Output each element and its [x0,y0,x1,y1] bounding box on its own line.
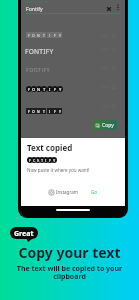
staticText: Y [53,158,56,163]
staticText: F [54,87,57,92]
staticText: Y [59,109,61,114]
staticText: Copy your text [0,243,139,262]
button[interactable]: Instagram [21,186,125,198]
staticText: F [28,87,31,92]
staticText: T [43,109,45,114]
staticText: F [28,109,30,114]
staticText: F [29,158,31,163]
staticText: N [37,109,40,114]
staticText: F [54,33,56,38]
staticText: The text will be copied to your clipboar… [0,264,139,281]
staticText: N [37,87,41,92]
staticText: Great [14,229,34,239]
staticText: N [37,158,40,163]
staticText: Y [59,33,61,38]
staticText: I [49,87,51,92]
staticText: Now paste it where you want! [27,167,90,173]
staticText: Go [91,189,97,195]
staticText: Y [59,87,62,92]
staticText: I [45,158,47,163]
button[interactable]: Clear text [105,5,113,13]
staticText: Enter your text [25,0,51,4]
staticText: I [49,109,51,114]
staticText: Instagram [56,189,78,195]
staticText: O [32,33,35,38]
staticText: Fontify [26,5,43,12]
staticText: FONTIFY [25,47,54,56]
staticText: O [32,109,35,114]
button[interactable]: Copy [93,120,117,130]
button[interactable]: More options [115,4,121,11]
staticText: O [33,158,36,163]
staticText: T [43,33,45,38]
staticText: F [54,109,56,114]
staticText: T [43,87,46,92]
staticText: F [28,33,30,38]
staticText: O [32,87,36,92]
staticText: ғօռтıғʏ [26,65,50,74]
staticText: N [37,33,40,38]
staticText: I [49,33,51,38]
staticText: T [41,158,44,163]
staticText: Copy [102,122,114,129]
staticText: Text copied [27,142,73,153]
staticText: F [49,158,51,163]
